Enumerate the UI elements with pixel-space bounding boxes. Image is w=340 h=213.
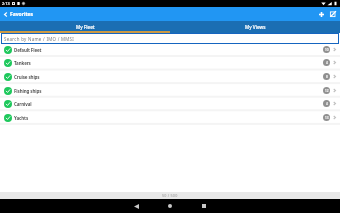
button[interactable]: Add <box>315 8 327 20</box>
button[interactable]: Search by Name / IMO / MMSI <box>1 33 339 44</box>
button[interactable]: Back <box>119 199 153 213</box>
staticText: Cruise ships <box>14 74 40 80</box>
staticText: 8 <box>326 75 328 79</box>
staticText: 4 <box>326 61 328 65</box>
staticText: 50 / 500 <box>162 193 178 198</box>
button[interactable]: Fishing ships <box>0 84 340 97</box>
button[interactable]: Default Fleet <box>0 43 340 56</box>
button[interactable]: Tankers <box>0 56 340 69</box>
staticText: Yachts <box>14 115 29 121</box>
staticText: 13 <box>325 116 329 120</box>
staticText: Favorites <box>10 11 34 18</box>
button[interactable]: My Views <box>170 21 340 33</box>
button[interactable]: Recents <box>187 199 221 213</box>
button[interactable]: My Fleet <box>0 21 170 33</box>
staticText: Fishing ships <box>14 88 42 94</box>
staticText: 12 <box>325 89 329 93</box>
button[interactable]: Back <box>0 9 10 19</box>
staticText: Carnival <box>14 101 32 107</box>
button[interactable]: Yachts <box>0 111 340 124</box>
staticText: Default Fleet <box>14 47 42 53</box>
staticText: 4 <box>326 102 328 106</box>
staticText: 2:13 <box>2 1 10 6</box>
staticText: 10 <box>325 48 329 52</box>
staticText: My Fleet <box>76 24 95 30</box>
button[interactable]: Carnival <box>0 97 340 110</box>
button[interactable]: Cruise ships <box>0 70 340 83</box>
staticText: Tankers <box>14 60 31 66</box>
button[interactable]: Edit <box>327 8 339 20</box>
button[interactable]: Home <box>153 199 187 213</box>
staticText: Search by Name / IMO / MMSI <box>4 36 75 42</box>
staticText: My Views <box>245 24 266 30</box>
